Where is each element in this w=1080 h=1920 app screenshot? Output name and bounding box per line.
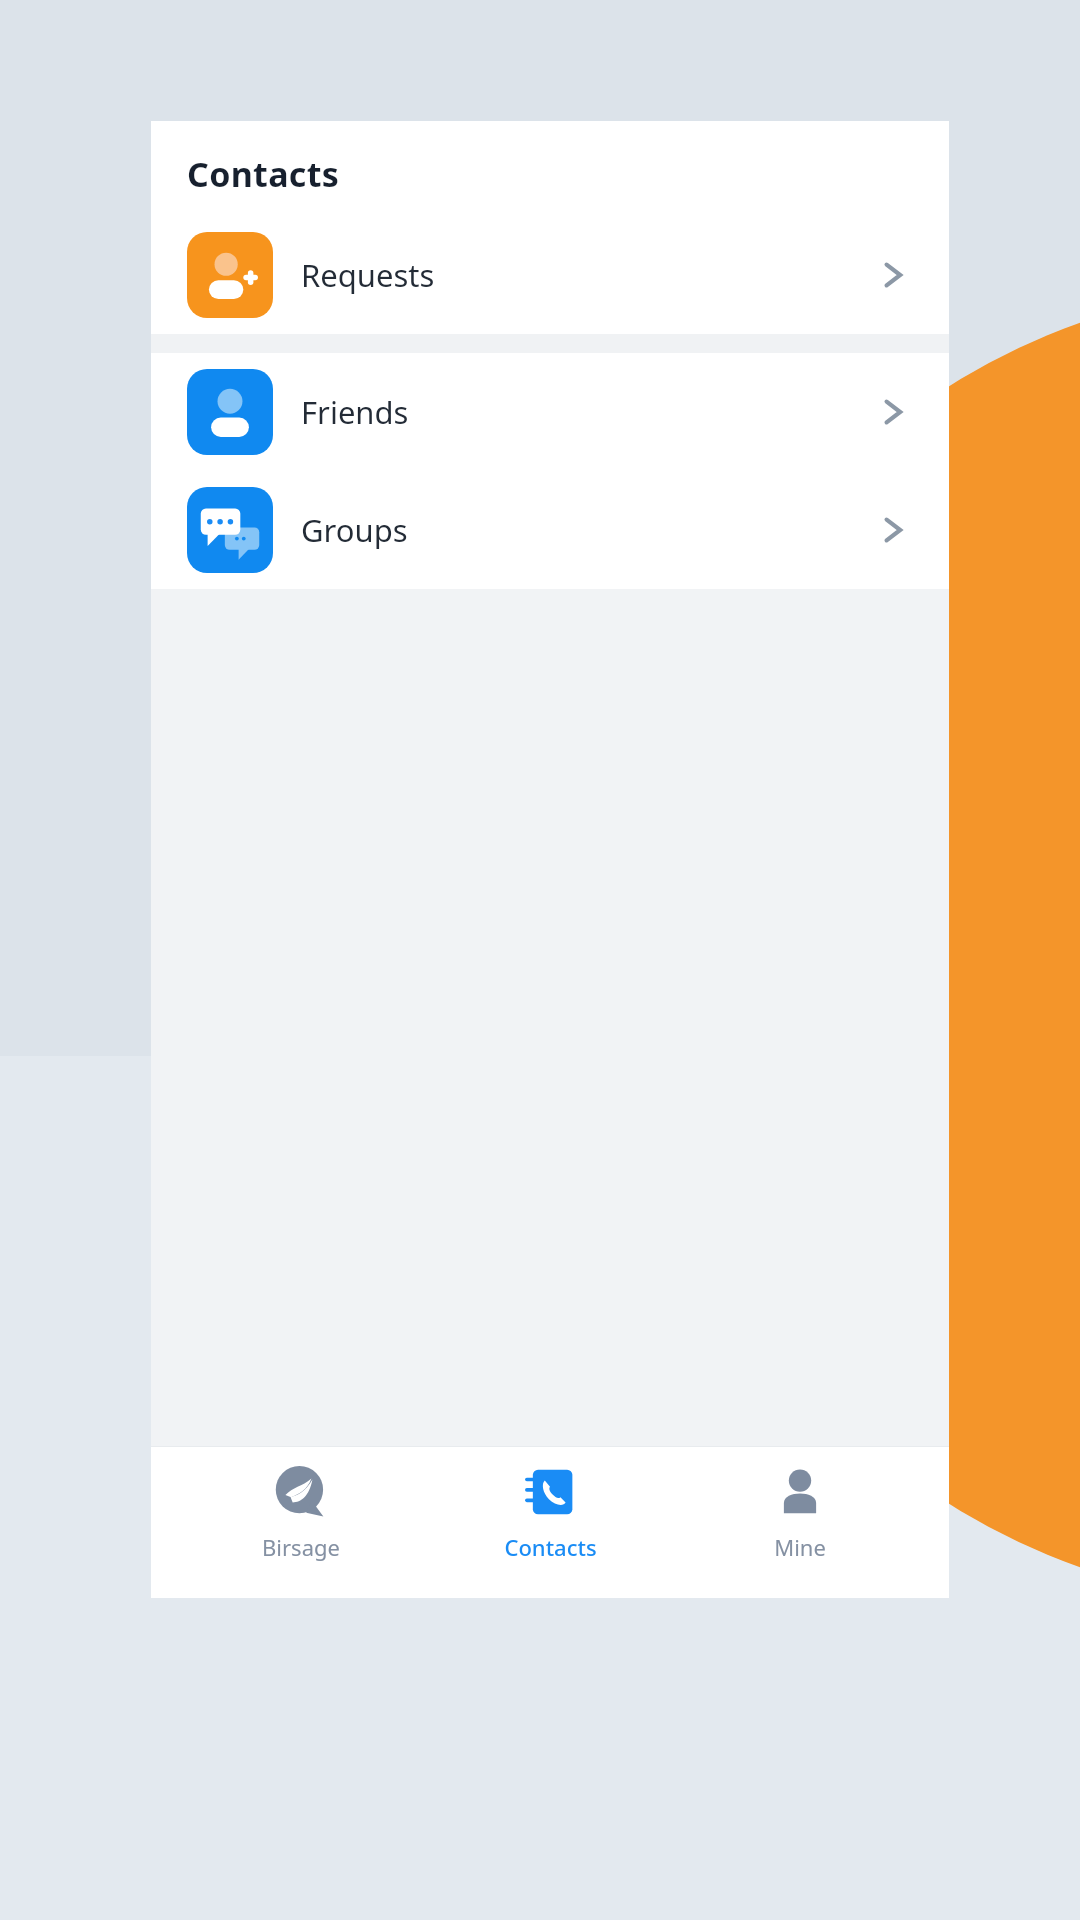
staticText: Groups — [301, 509, 408, 551]
staticText: Birsage — [262, 1532, 340, 1562]
other: Birsage — [275, 1466, 327, 1518]
staticText: Friends — [301, 391, 409, 433]
button[interactable]: Contacts — [450, 1460, 650, 1566]
button[interactable]: Requests — [151, 216, 949, 334]
button[interactable]: Birsage — [201, 1460, 401, 1566]
button[interactable]: Groups — [151, 471, 949, 589]
staticText: Contacts — [187, 151, 340, 197]
other: Mine — [774, 1466, 826, 1518]
other: Contacts — [524, 1466, 576, 1518]
staticText: Requests — [301, 254, 435, 296]
staticText: Contacts — [504, 1532, 597, 1562]
staticText: Mine — [774, 1532, 826, 1562]
button[interactable]: Friends — [151, 353, 949, 471]
button[interactable]: Mine — [700, 1460, 900, 1566]
